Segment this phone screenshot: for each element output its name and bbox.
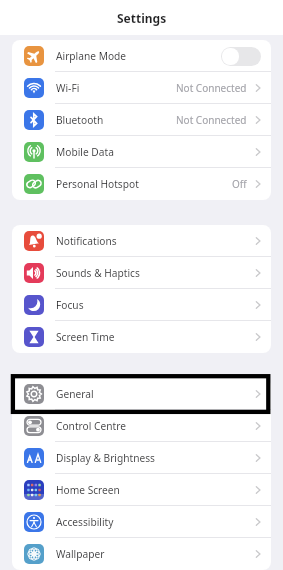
staticText: Bluetooth <box>56 113 104 127</box>
staticText: Screen Time <box>56 330 115 344</box>
button[interactable]: Control Centre <box>12 410 271 442</box>
button[interactable]: Bluetooth <box>12 104 271 136</box>
staticText: General <box>56 387 94 401</box>
button[interactable]: Focus <box>12 289 271 321</box>
button[interactable]: Home Screen <box>12 474 271 506</box>
button[interactable]: Notifications <box>12 225 271 257</box>
staticText: Mobile Data <box>56 145 114 159</box>
staticText: Personal Hotspot <box>56 177 139 191</box>
staticText: Home Screen <box>56 483 120 497</box>
staticText: Not Connected <box>176 113 247 127</box>
button[interactable]: Screen Time <box>12 321 271 353</box>
button[interactable]: Sounds & Haptics <box>12 257 271 289</box>
staticText: Accessibility <box>56 515 114 529</box>
staticText: Airplane Mode <box>56 49 127 63</box>
button[interactable]: Airplane Mode <box>12 40 271 72</box>
staticText: Notifications <box>56 234 117 248</box>
staticText: Control Centre <box>56 419 126 433</box>
button[interactable]: Personal Hotspot <box>12 168 271 200</box>
button[interactable]: Mobile Data <box>12 136 271 168</box>
button[interactable]: General <box>12 378 271 410</box>
staticText: Off <box>232 177 247 191</box>
button[interactable]: Wallpaper <box>12 538 271 570</box>
button[interactable]: Wi-Fi <box>12 72 271 104</box>
staticText: Settings <box>117 10 167 26</box>
staticText: Not Connected <box>176 81 247 95</box>
button[interactable]: Display & Brightness <box>12 442 271 474</box>
staticText: Wi-Fi <box>56 81 80 95</box>
staticText: Sounds & Haptics <box>56 266 140 280</box>
button[interactable]: Accessibility <box>12 506 271 538</box>
staticText: Wallpaper <box>56 547 105 561</box>
staticText: Focus <box>56 298 84 312</box>
staticText: Display & Brightness <box>56 451 156 465</box>
button[interactable]: Airplane Mode toggle <box>221 47 261 66</box>
